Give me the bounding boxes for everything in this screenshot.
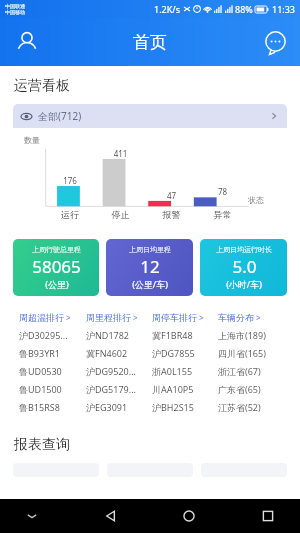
staticText: > xyxy=(66,312,71,323)
staticText: 鲁UD0530 xyxy=(19,365,86,377)
staticText: 浙江省(67) xyxy=(218,365,284,377)
staticText: 车辆分布 xyxy=(218,312,254,323)
button[interactable]: Recents xyxy=(252,500,284,532)
staticText: 冀F1BR48 xyxy=(152,329,218,341)
staticText: 58065 xyxy=(32,255,81,278)
button[interactable]: 全部(712) xyxy=(13,104,287,128)
staticText: 报表查询 xyxy=(14,436,70,454)
staticText: 11:33 xyxy=(272,3,296,15)
staticText: 78 xyxy=(197,186,248,197)
staticText: 周超温排行 xyxy=(19,312,64,323)
staticText: 沪DG5179... xyxy=(86,383,152,395)
button[interactable]: Home xyxy=(173,500,205,532)
staticText: 冀FN4602 xyxy=(86,347,152,359)
staticText: 47 xyxy=(146,190,197,201)
staticText: 176 xyxy=(45,175,95,186)
staticText: 411 xyxy=(95,148,146,159)
staticText: 报警 xyxy=(146,209,197,220)
staticText: 浙A0L155 xyxy=(152,365,218,377)
staticText: 四川省(165) xyxy=(218,347,284,359)
button[interactable]: Back xyxy=(95,500,127,532)
staticText: 状态 xyxy=(248,195,264,205)
staticText: 鲁B15RS8 xyxy=(19,401,86,413)
staticText: 12 xyxy=(140,255,160,278)
staticText: > xyxy=(256,312,261,323)
staticText: 88% xyxy=(235,3,253,15)
button[interactable]: 上周日均里程 xyxy=(106,239,193,296)
staticText: 沪DG7855 xyxy=(152,347,218,359)
button[interactable]: Hide xyxy=(16,500,48,532)
staticText: 1.2K/s xyxy=(154,3,180,15)
button[interactable]: 周停车排行 xyxy=(152,312,218,323)
staticText: > xyxy=(199,312,204,323)
staticText: 沪EG3091 xyxy=(86,401,152,413)
button[interactable]: 周超温排行 xyxy=(19,312,86,323)
staticText: 周里程排行 xyxy=(86,312,131,323)
button[interactable]: Profile xyxy=(10,25,44,59)
staticText: 周停车排行 xyxy=(152,312,197,323)
button[interactable]: 周里程排行 xyxy=(86,312,152,323)
staticText: 中国联通 xyxy=(5,3,25,9)
staticText: 广东省(65) xyxy=(218,383,284,395)
staticText: 沪D30295... xyxy=(19,329,86,341)
staticText: 上周日均里程 xyxy=(129,245,171,254)
button[interactable]: Messages xyxy=(258,25,292,59)
staticText: 鲁B93YR1 xyxy=(19,347,86,359)
staticText: (公里) xyxy=(45,278,69,290)
button[interactable]: 车辆分布 xyxy=(218,312,284,323)
staticText: 全部(712) xyxy=(38,109,82,123)
staticText: 停止 xyxy=(95,209,146,220)
staticText: > xyxy=(133,312,138,323)
staticText: 运营看板 xyxy=(14,77,70,95)
button[interactable]: 上周行驶总里程 xyxy=(13,239,99,296)
staticText: 上海市(189) xyxy=(218,329,284,341)
staticText: 沪BH2S15 xyxy=(152,401,218,413)
staticText: 中国移动 xyxy=(5,9,25,15)
staticText: 异常 xyxy=(197,209,248,220)
staticText: 首页 xyxy=(133,32,167,53)
staticText: 沪ND1782 xyxy=(86,329,152,341)
staticText: 5.0 xyxy=(232,255,257,278)
staticText: 数量 xyxy=(24,135,40,145)
staticText: 川AA10P5 xyxy=(152,383,218,395)
staticText: (公里/车) xyxy=(132,278,168,290)
staticText: 江苏省(52) xyxy=(218,401,284,413)
staticText: (小时/车) xyxy=(226,278,262,290)
button[interactable]: 上周日均运行时长 xyxy=(200,239,287,296)
staticText: 鲁UD1500 xyxy=(19,383,86,395)
staticText: 沪DG9520... xyxy=(86,365,152,377)
staticText: 运行 xyxy=(45,209,95,220)
staticText: 上周行驶总里程 xyxy=(32,245,81,254)
staticText: 上周日均运行时长 xyxy=(216,245,272,254)
